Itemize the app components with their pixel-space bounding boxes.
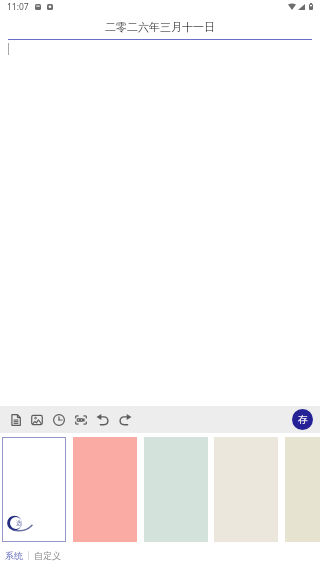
staticText: 存 <box>298 414 308 426</box>
button[interactable]: Insert time <box>48 406 70 433</box>
staticText: 二零二六年三月十一日 <box>105 20 215 34</box>
staticText: 选 <box>16 519 22 527</box>
button[interactable]: Undo <box>92 406 114 433</box>
button[interactable]: 自定义 <box>33 547 62 564</box>
button[interactable]: 存 <box>292 409 313 430</box>
button[interactable]: Paper style 1 <box>2 437 66 542</box>
button[interactable]: 系统 <box>4 547 24 564</box>
button[interactable]: Insert image <box>26 406 48 433</box>
button[interactable]: Text format <box>5 406 27 433</box>
button[interactable]: Redo <box>114 406 136 433</box>
staticText: 11:07 <box>7 1 29 13</box>
button[interactable]: OCR scan <box>70 406 92 433</box>
staticText: 系统 <box>5 550 23 561</box>
staticText: 自定义 <box>34 550 61 561</box>
